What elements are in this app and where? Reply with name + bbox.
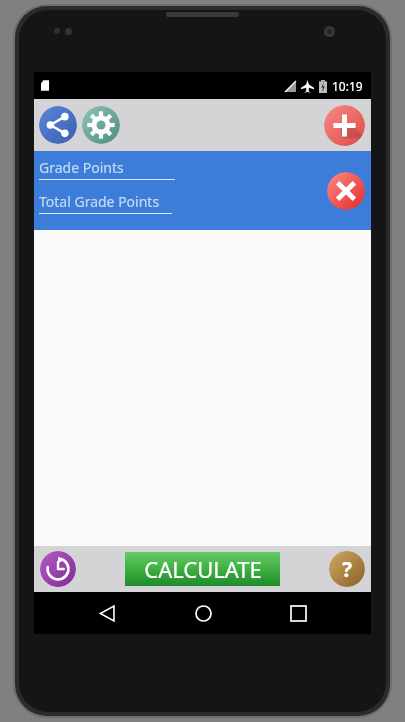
button[interactable]: Settings — [82, 106, 120, 144]
button[interactable]: Clear — [327, 172, 365, 210]
staticText: Total Grade Points — [39, 192, 160, 211]
button[interactable]: Help — [329, 551, 365, 587]
button[interactable]: Grade Points — [39, 158, 175, 180]
staticText: 10:19 — [332, 78, 363, 94]
button[interactable]: Recent apps — [276, 592, 320, 634]
staticText: Grade Points — [39, 158, 124, 177]
button[interactable]: CALCULATE — [125, 552, 280, 586]
button[interactable]: Home — [181, 592, 225, 634]
button[interactable]: Share — [39, 106, 77, 144]
staticText: ? — [342, 555, 353, 584]
button[interactable]: History — [40, 551, 76, 587]
button[interactable]: Total Grade Points — [39, 192, 172, 214]
button[interactable]: Back — [85, 592, 129, 634]
button[interactable]: Add — [324, 105, 365, 146]
staticText: CALCULATE — [144, 554, 262, 584]
